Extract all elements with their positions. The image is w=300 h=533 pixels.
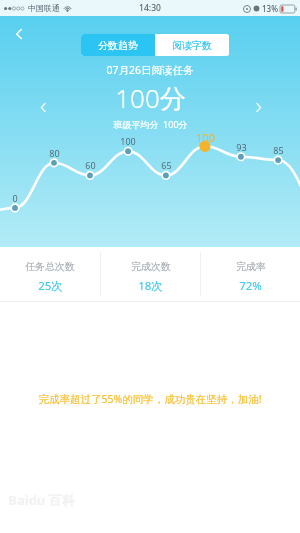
button[interactable]: 分数趋势 <box>81 34 155 56</box>
staticText: 班级平均分 100分 <box>113 118 188 130</box>
button[interactable]: 完成次数 <box>101 247 200 294</box>
staticText: 07月26日阅读任务 <box>106 63 194 77</box>
staticText: 60 <box>85 159 96 171</box>
staticText: 100 <box>120 135 136 147</box>
staticText: 80 <box>49 147 60 159</box>
staticText: 14:30 <box>139 2 161 14</box>
button[interactable]: Back <box>6 21 32 47</box>
staticText: 分数趋势 <box>98 39 138 52</box>
button[interactable]: Previous day <box>30 94 56 120</box>
staticText: 72% <box>239 278 262 294</box>
button[interactable]: Next day <box>245 94 271 120</box>
button[interactable]: 完成率 <box>201 247 300 294</box>
staticText: 13% <box>262 3 278 14</box>
staticText: 93 <box>236 141 247 153</box>
staticText: 完成率超过了55%的同学，成功贵在坚持，加油! <box>38 392 262 406</box>
staticText: 65 <box>161 159 172 171</box>
staticText: 任务总次数 <box>25 260 75 273</box>
staticText: 完成率 <box>236 260 266 273</box>
staticText: 100 <box>196 130 215 145</box>
staticText: 85 <box>273 144 284 156</box>
staticText: 0 <box>12 192 18 204</box>
staticText: 25次 <box>38 278 63 294</box>
staticText: 100分 <box>115 80 186 116</box>
button[interactable]: 阅读字数 <box>155 34 229 56</box>
staticText: 阅读字数 <box>172 39 212 52</box>
staticText: 中国联通 <box>28 3 60 13</box>
staticText: Baidu 百科 <box>8 491 75 509</box>
staticText: 18次 <box>138 278 163 294</box>
staticText: 完成次数 <box>131 260 171 273</box>
button[interactable]: 任务总次数 <box>0 247 100 294</box>
